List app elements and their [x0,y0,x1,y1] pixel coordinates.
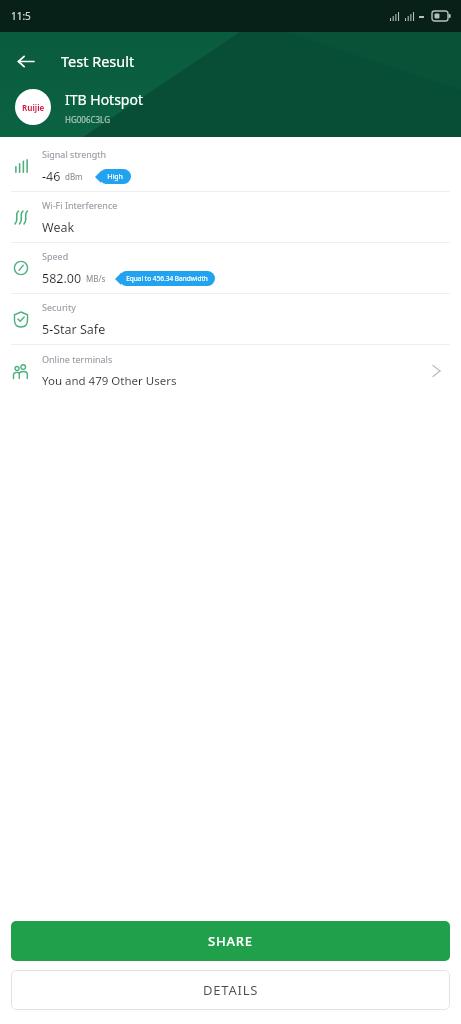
staticText: Wi-Fi Interference [42,199,118,211]
staticText: Weak [42,219,75,236]
button[interactable]: Back [8,44,42,78]
staticText: ITB Hotspot [65,90,144,109]
button[interactable]: DETAILS [11,970,450,1010]
staticText: DETAILS [203,981,259,999]
button[interactable]: Security [0,294,461,345]
staticText: You and 479 Other Users [42,373,177,389]
staticText: High [107,172,123,182]
button[interactable]: SHARE [11,921,450,961]
staticText: Test Result [61,51,135,71]
staticText: SHARE [208,932,253,950]
staticText: dBm [65,171,83,182]
staticText: Signal strength [42,148,107,160]
button[interactable]: Wi-Fi Interference [0,192,461,243]
staticText: 582.00 [42,270,82,287]
staticText: -46 [42,168,61,185]
staticText: 11:5 [11,9,31,23]
staticText: Security [42,301,76,313]
button[interactable]: Speed [0,243,461,294]
staticText: MB/s [86,273,106,284]
button[interactable]: Online terminals [0,345,461,397]
staticText: HG006C3LG [65,114,110,125]
staticText: Equal to 456.34 Bandwidth [126,274,208,283]
button[interactable]: Signal strength [0,141,461,192]
staticText: Online terminals [42,353,113,365]
staticText: Speed [42,250,69,262]
staticText: 5-Star Safe [42,321,106,338]
staticText: Ruijie [22,102,45,113]
